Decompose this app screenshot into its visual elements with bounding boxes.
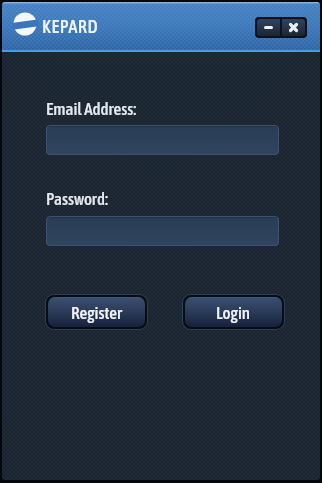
button[interactable]	[282, 19, 305, 36]
staticText: Login	[216, 303, 251, 322]
staticText: Password:	[46, 189, 108, 208]
staticText: Email Address:	[46, 99, 137, 118]
staticText: KEPARD	[42, 16, 99, 37]
button[interactable]: Register	[48, 297, 145, 327]
button[interactable]: Login	[185, 297, 282, 327]
button[interactable]	[46, 216, 279, 246]
button[interactable]	[46, 125, 279, 155]
button[interactable]	[257, 19, 280, 36]
staticText: Register	[71, 303, 122, 322]
